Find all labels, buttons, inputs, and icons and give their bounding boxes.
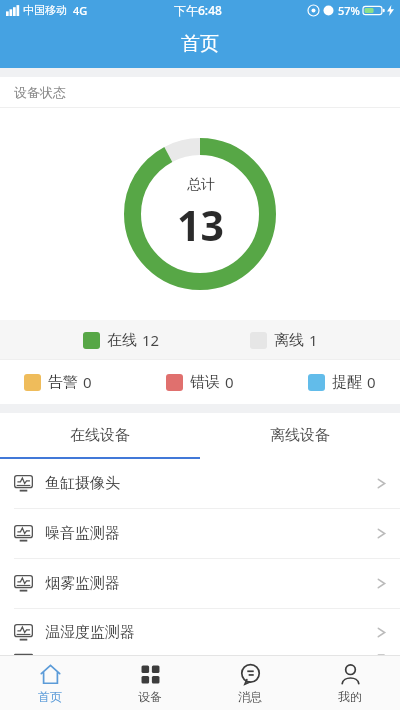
button[interactable]: 首页 — [0, 656, 100, 710]
staticText: 57% — [338, 3, 360, 18]
staticText: 0 — [225, 372, 234, 392]
staticText: 消息 — [238, 689, 262, 704]
staticText: 提醒 — [332, 373, 362, 392]
staticText: 中国移动 — [23, 3, 67, 17]
button[interactable]: 烟雾监测器 — [0, 559, 400, 608]
staticText: 错误 — [190, 373, 220, 392]
staticText: 设备状态 — [14, 84, 66, 100]
button[interactable]: 噪音监测器 — [0, 509, 400, 558]
staticText: 离线 — [274, 331, 304, 350]
button[interactable]: 设备 — [100, 656, 200, 710]
staticText: 总计 — [187, 176, 215, 194]
button[interactable]: 离线 — [250, 330, 318, 350]
button[interactable]: 消息 — [200, 656, 300, 710]
button[interactable]: 在线 — [83, 330, 160, 350]
button[interactable]: 温湿度监测器 — [0, 609, 400, 655]
button[interactable]: 告警 — [24, 372, 92, 392]
staticText: 0 — [83, 372, 92, 392]
staticText: 告警 — [48, 373, 78, 392]
staticText: 0 — [367, 372, 376, 392]
staticText: 12 — [142, 330, 160, 350]
staticText: 烟雾监测器 — [45, 574, 120, 593]
button[interactable]: 离线设备 — [200, 413, 400, 457]
staticText: 1 — [309, 330, 318, 350]
button[interactable]: 错误 — [166, 372, 234, 392]
staticText: 离线设备 — [270, 426, 330, 445]
staticText: 4G — [73, 3, 88, 18]
staticText: 噪音监测器 — [45, 524, 120, 543]
staticText: 我的 — [338, 689, 362, 704]
staticText: 首页 — [38, 689, 62, 704]
staticText: 13 — [177, 197, 224, 253]
staticText: 在线 — [107, 331, 137, 350]
staticText: 首页 — [181, 32, 219, 56]
staticText: 下午6:48 — [174, 2, 222, 18]
button[interactable]: 鱼缸摄像头 — [0, 459, 400, 508]
button[interactable]: 在线设备 — [0, 413, 200, 457]
button[interactable]: 我的 — [300, 656, 400, 710]
button[interactable]: 提醒 — [308, 372, 376, 392]
staticText: 设备 — [138, 689, 162, 704]
staticText: 鱼缸摄像头 — [45, 474, 120, 493]
staticText: 温湿度监测器 — [45, 623, 135, 642]
staticText: 在线设备 — [70, 426, 130, 445]
